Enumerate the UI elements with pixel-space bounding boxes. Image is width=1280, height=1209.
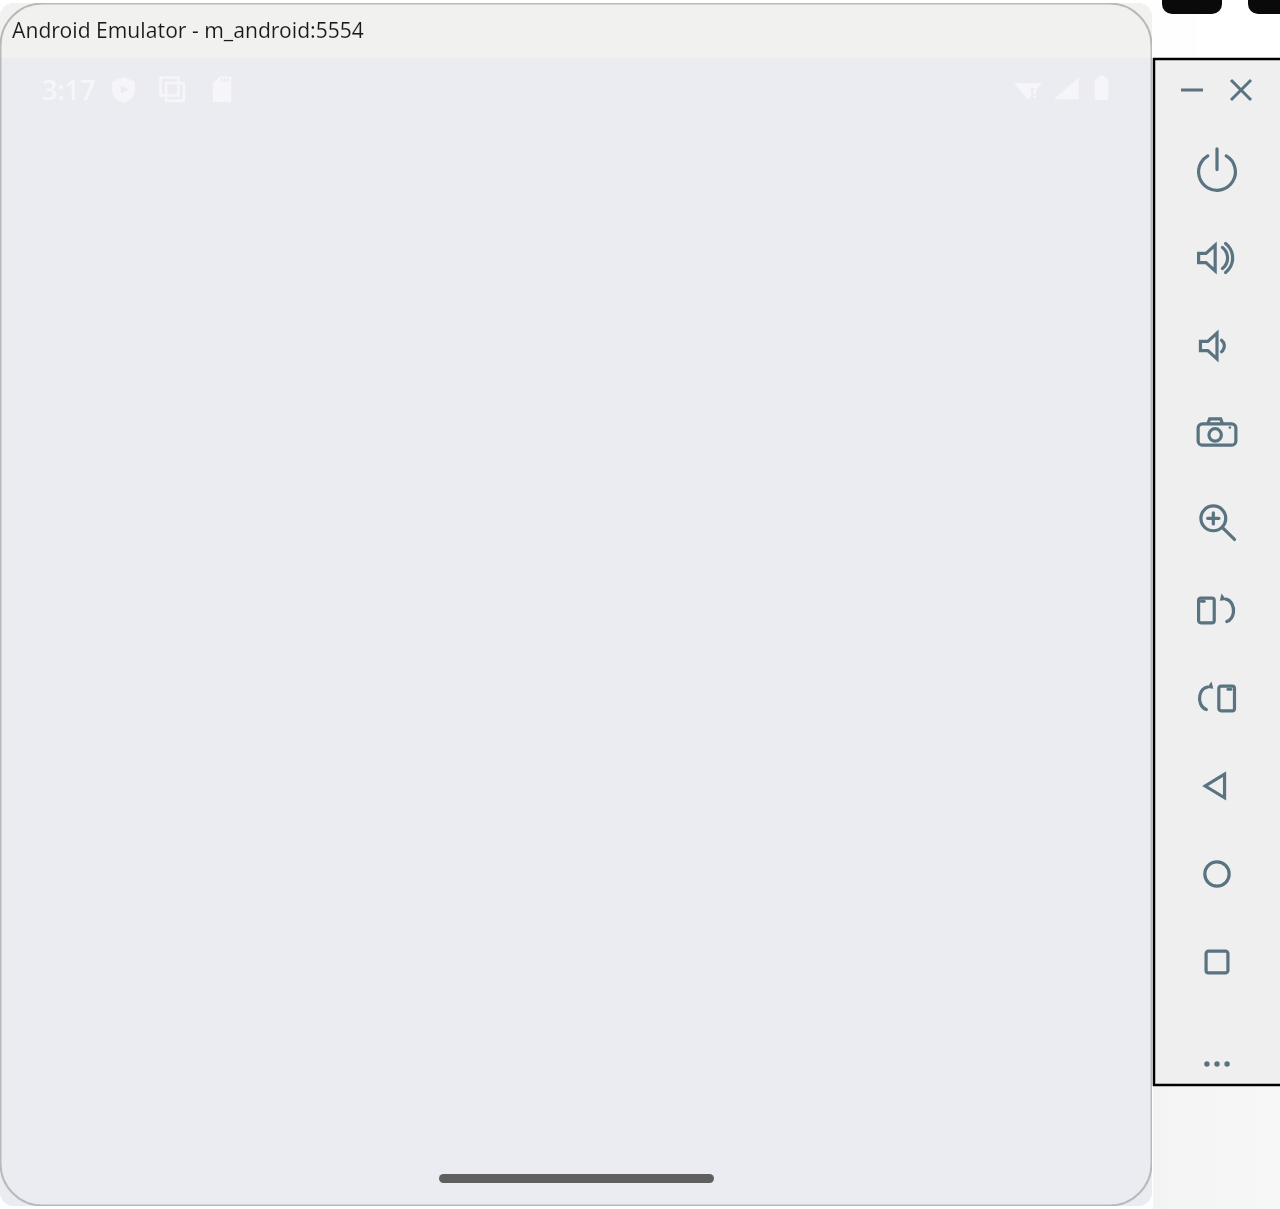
button[interactable]: Home [439, 1174, 714, 1183]
button[interactable]: Rotate left [1153, 566, 1280, 654]
button[interactable]: Overview [1153, 918, 1280, 1006]
button[interactable]: Home [1153, 830, 1280, 918]
button[interactable]: Minimize [1175, 73, 1209, 107]
button[interactable]: Rotate right [1153, 654, 1280, 742]
button[interactable]: Close [1224, 73, 1258, 107]
button[interactable]: Back [1153, 742, 1280, 830]
button[interactable]: Take screenshot [1153, 390, 1280, 478]
staticText: 3:17 [42, 71, 96, 108]
button[interactable]: Volume up [1153, 214, 1280, 302]
button[interactable]: Power [1153, 126, 1280, 214]
button[interactable]: More [1153, 1020, 1280, 1108]
button[interactable]: Zoom [1153, 478, 1280, 566]
staticText: Android Emulator - m_android:5554 [12, 16, 364, 45]
button[interactable]: Volume down [1153, 302, 1280, 390]
